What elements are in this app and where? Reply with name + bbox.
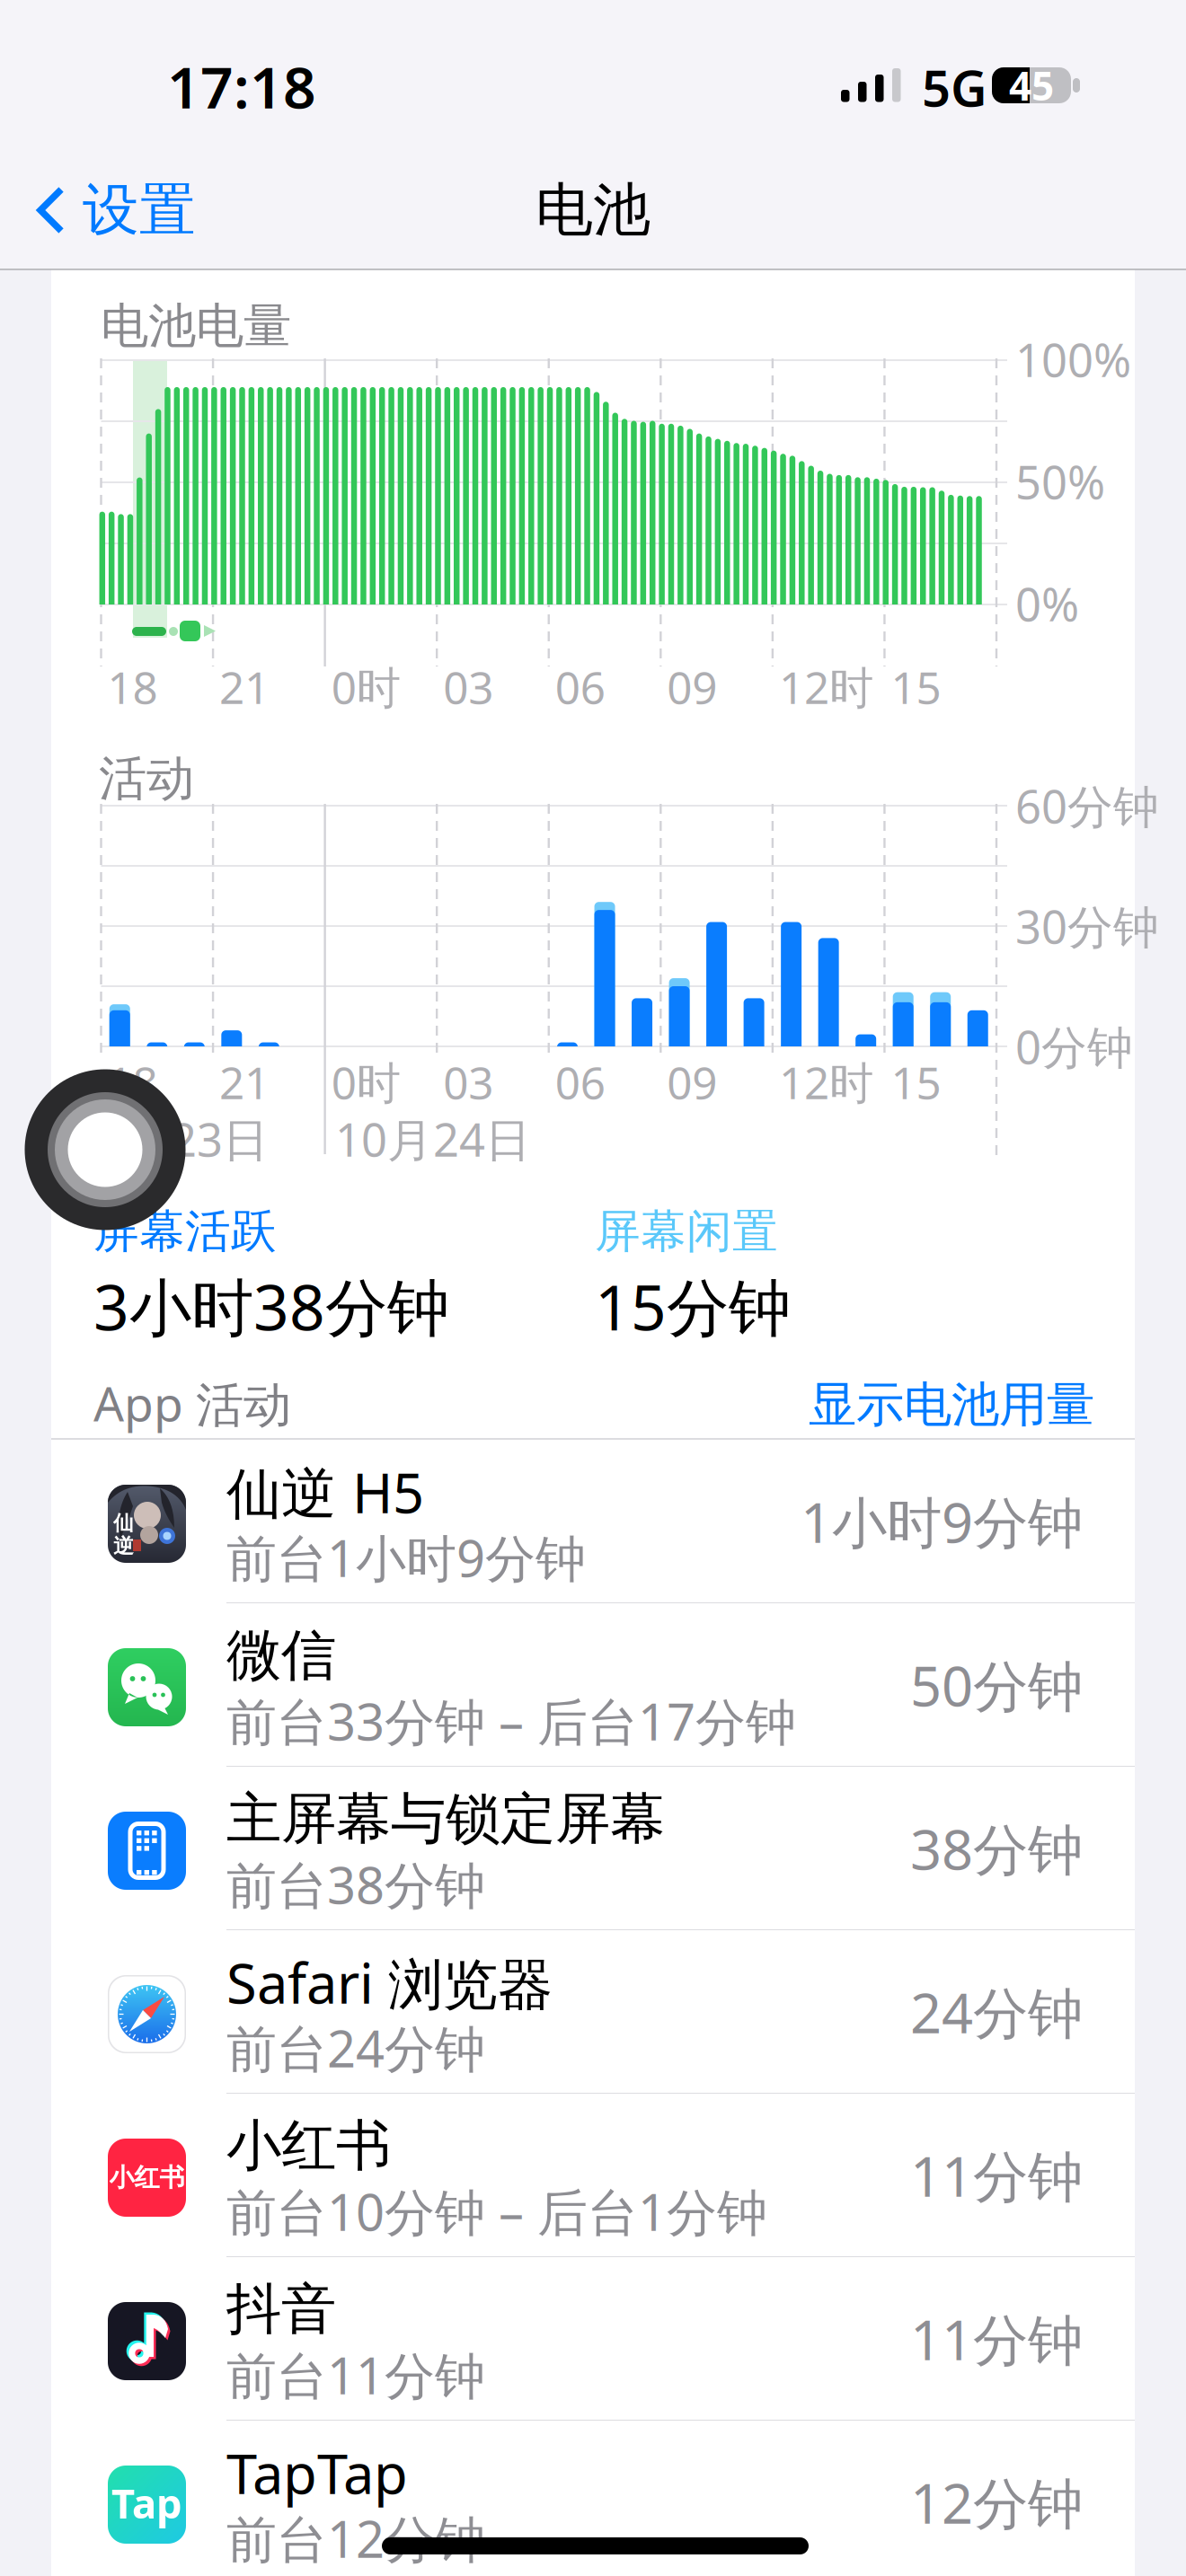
staticText: 主屏幕与锁定屏幕 xyxy=(226,1785,665,1853)
staticText: 11分钟 xyxy=(910,2139,1083,2212)
staticText: 15分钟 xyxy=(595,1265,791,1348)
staticText: 10月24日 xyxy=(335,1109,531,1169)
staticText: 12时 xyxy=(779,657,873,716)
staticText: 45 xyxy=(1009,59,1054,112)
staticText: 屏幕闲置 xyxy=(595,1204,778,1259)
staticText: 15 xyxy=(891,1052,941,1111)
staticText: 小红书 xyxy=(109,2162,185,2193)
staticText: 06 xyxy=(555,1052,605,1111)
button[interactable]: 显示电池用量 xyxy=(735,1380,1094,1430)
staticText: 5G xyxy=(922,54,987,121)
staticText: 前台38分钟 xyxy=(226,1851,485,1918)
staticText: 电池电量 xyxy=(101,297,291,355)
staticText: 30分钟 xyxy=(1015,896,1159,956)
staticText: 0时 xyxy=(331,657,400,716)
staticText: 60分钟 xyxy=(1015,775,1159,836)
staticText: 3小时38分钟 xyxy=(93,1265,449,1348)
staticText: 前台11分钟 xyxy=(226,2341,485,2408)
staticText: 前台12分钟 xyxy=(226,2505,485,2572)
staticText: Safari 浏览器 xyxy=(226,1946,553,2019)
staticText: 0% xyxy=(1015,573,1079,634)
staticText: 21 xyxy=(219,1052,270,1111)
staticText: 100% xyxy=(1015,329,1131,390)
staticText: 仙 xyxy=(113,1510,134,1535)
staticText: 50% xyxy=(1015,451,1105,512)
staticText: 38分钟 xyxy=(910,1812,1083,1885)
staticText: 设置 xyxy=(83,176,196,245)
staticText: 18 xyxy=(107,1052,158,1111)
button[interactable]: 主屏幕与锁定屏幕 xyxy=(51,1767,1135,1930)
staticText: 06 xyxy=(555,657,605,716)
staticText: 09 xyxy=(667,1052,717,1111)
staticText: 前台24分钟 xyxy=(226,2014,485,2081)
staticText: 活动 xyxy=(99,749,194,808)
staticText: 15 xyxy=(891,657,941,716)
staticText: 50分钟 xyxy=(910,1648,1083,1722)
staticText: Tap xyxy=(111,2476,182,2530)
button[interactable]: 返回设置 xyxy=(34,183,196,237)
staticText: 1小时9分钟 xyxy=(801,1485,1083,1558)
button[interactable]: 仙 xyxy=(51,1440,1135,1603)
button[interactable]: 小红书 xyxy=(51,2094,1135,2257)
staticText: 12时 xyxy=(779,1052,873,1111)
staticText: 11分钟 xyxy=(910,2302,1083,2375)
staticText: 03 xyxy=(443,657,493,716)
staticText: 0时 xyxy=(331,1052,400,1111)
staticText: 电池 xyxy=(535,175,651,245)
staticText: App 活动 xyxy=(93,1371,291,1435)
staticText: 抖音 xyxy=(226,2275,336,2343)
staticText: 24分钟 xyxy=(910,1975,1083,2048)
staticText: 仙逆 H5 xyxy=(226,1455,424,1528)
staticText: 显示电池用量 xyxy=(809,1375,1094,1434)
button[interactable]: 微信 xyxy=(51,1603,1135,1767)
staticText: 前台10分钟 – 后台1分钟 xyxy=(226,2178,767,2245)
staticText: 12分钟 xyxy=(910,2466,1083,2539)
staticText: 09 xyxy=(667,657,717,716)
button[interactable]: Tap xyxy=(51,2421,1135,2576)
staticText: 屏幕活跃 xyxy=(93,1204,277,1259)
button[interactable]: Safari 浏览器 xyxy=(51,1930,1135,2094)
staticText: TapTap xyxy=(226,2436,408,2509)
button[interactable]: 辅助触控 xyxy=(25,1069,186,1230)
staticText: 小红书 xyxy=(226,2112,391,2180)
staticText: 微信 xyxy=(226,1621,336,1689)
button[interactable]: 屏幕活跃 xyxy=(93,1204,525,1348)
staticText: 17:18 xyxy=(167,48,316,124)
button[interactable]: 抖音 xyxy=(51,2257,1135,2421)
staticText: 前台1小时9分钟 xyxy=(226,1524,586,1591)
staticText: 0分钟 xyxy=(1015,1016,1133,1077)
staticText: 逆 xyxy=(113,1534,134,1559)
staticText: 18 xyxy=(107,657,158,716)
button[interactable]: 屏幕闲置 xyxy=(595,1204,972,1348)
staticText: 21 xyxy=(219,657,270,716)
staticText: 23日 xyxy=(171,1109,269,1169)
staticText: 前台33分钟 – 后台17分钟 xyxy=(226,1688,796,1754)
staticText: 03 xyxy=(443,1052,493,1111)
